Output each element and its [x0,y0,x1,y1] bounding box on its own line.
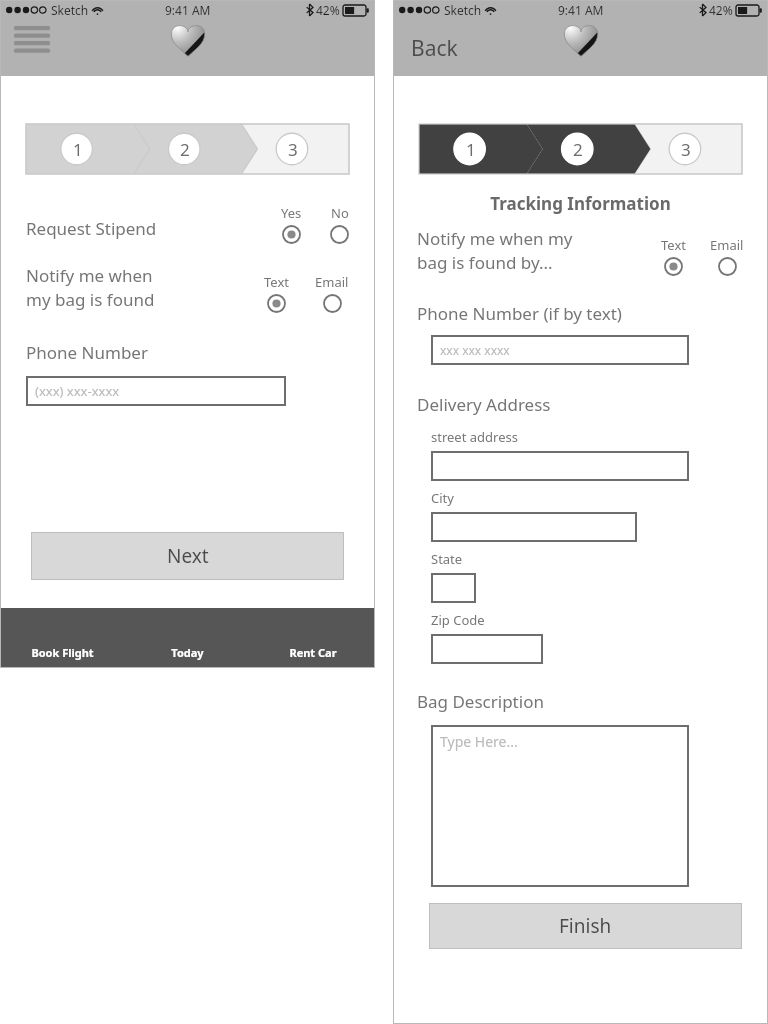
staticText: Delivery Address [417,393,551,416]
staticText: 9:41 AM [165,2,211,18]
button[interactable]: No [326,204,353,244]
staticText: Finish [559,913,612,939]
staticText: Phone Number (if by text) [417,302,622,325]
staticText: (xxx) xxx-xxxx [35,382,120,400]
button[interactable]: Type Here... [431,725,689,887]
staticText: 2 [180,138,190,161]
button[interactable] [431,634,543,664]
staticText: xxx xxx xxxx [440,342,510,358]
staticText: Book Flight [31,645,94,660]
staticText: 3 [288,138,298,161]
staticText: No [331,204,349,222]
staticText: 1 [466,138,476,161]
button[interactable] [431,512,637,542]
button[interactable]: (xxx) xxx-xxxx [26,376,286,406]
staticText: 42% [316,2,340,18]
staticText: Bag Description [417,690,544,713]
staticText: Text [661,236,686,254]
staticText: Type Here... [440,732,518,751]
button[interactable] [431,573,476,603]
staticText: 3 [681,138,691,161]
button[interactable]: Next [31,532,344,580]
staticText: 2 [573,138,583,161]
staticText: Notify me when my bag is found [26,264,260,311]
staticText: Zip Code [431,611,485,629]
button[interactable]: Menu [14,26,50,56]
button[interactable]: Book Flight [0,608,125,668]
button[interactable]: Text [657,236,690,276]
button[interactable]: Email [706,236,748,276]
button[interactable]: Yes [277,204,306,244]
staticText: Tracking Information [393,192,768,215]
staticText: Notify me when my bag is found by... [417,227,657,274]
staticText: Phone Number [26,341,148,364]
staticText: Email [315,273,349,291]
button[interactable]: Rent Car [250,608,375,668]
staticText: Today [171,645,204,660]
staticText: 9:41 AM [558,2,604,18]
button[interactable]: Today [125,608,250,668]
staticText: Sketch [51,2,89,18]
button[interactable]: Back [411,34,458,63]
staticText: Email [710,236,744,254]
staticText: Request Stipend [26,217,277,240]
staticText: Back [411,34,458,63]
staticText: 1 [73,138,83,161]
button[interactable]: Text [260,273,293,313]
staticText: Next [167,543,209,569]
staticText: Sketch [444,2,482,18]
staticText: Rent Car [289,645,337,660]
staticText: street address [431,428,518,446]
staticText: State [431,550,463,568]
staticText: Text [264,273,289,291]
button[interactable]: xxx xxx xxxx [431,335,689,365]
staticText: City [431,489,454,507]
button[interactable]: Email [311,273,353,313]
button[interactable] [431,451,689,481]
staticText: Yes [281,204,302,222]
staticText: 42% [709,2,733,18]
button[interactable]: Finish [429,903,742,949]
